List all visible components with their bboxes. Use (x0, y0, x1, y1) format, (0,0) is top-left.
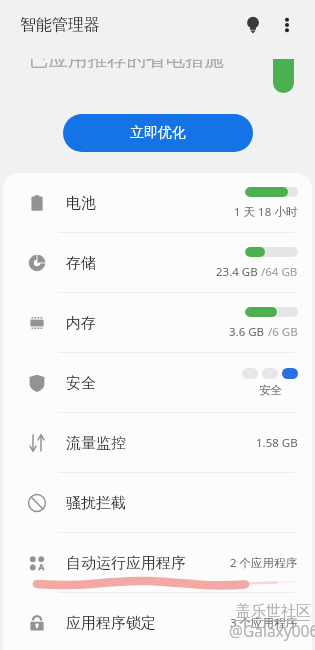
staticText: 骚扰拦截 (66, 494, 126, 513)
button[interactable]: 自动运行应用程序 (3, 533, 312, 593)
button[interactable]: More options (271, 9, 303, 41)
button[interactable]: 骚扰拦截 (3, 473, 312, 533)
staticText: 安全 (66, 374, 96, 393)
staticText: 安全 (259, 383, 282, 397)
staticText: 立即优化 (130, 124, 186, 142)
button[interactable]: 内存 (3, 293, 312, 353)
staticText: /6 GB (265, 324, 298, 340)
staticText: 自动运行应用程序 (66, 554, 186, 573)
staticText: 已应用推荐的省电措施 (29, 59, 224, 68)
staticText: 电池 (66, 194, 96, 213)
staticText: 盖乐世社区 (236, 602, 311, 621)
button[interactable]: 存储 (3, 233, 312, 293)
button[interactable]: 电池 (3, 173, 312, 233)
staticText: 1 天 18 小时 (234, 204, 298, 220)
button[interactable]: 应用程序锁定 (3, 593, 312, 650)
staticText: @Galaxy006 (229, 620, 315, 641)
button[interactable]: 立即优化 (63, 114, 253, 152)
button[interactable]: Tips (237, 9, 269, 41)
button[interactable]: 安全 (3, 353, 312, 413)
staticText: 内存 (66, 314, 96, 333)
staticText: 应用程序锁定 (66, 614, 156, 633)
staticText: 2 个应用程序 (230, 555, 298, 571)
staticText: 23.4 GB (216, 264, 258, 280)
staticText: 3.6 GB (229, 324, 265, 340)
staticText: 1.58 GB (256, 435, 298, 451)
staticText: /64 GB (258, 264, 298, 280)
button[interactable]: 流量监控 (3, 413, 312, 473)
staticText: 3 个应用程序 (230, 615, 298, 631)
staticText: 存储 (66, 254, 96, 273)
staticText: 流量监控 (66, 434, 126, 453)
staticText: 智能管理器 (20, 15, 100, 35)
